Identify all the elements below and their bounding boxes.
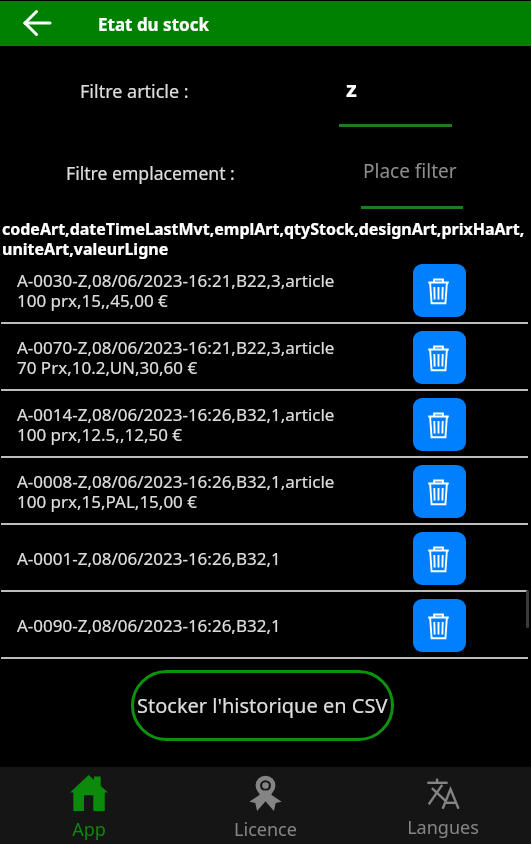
staticText: A-0014-Z,08/06/2023-16:26,B32,1,article …	[17, 403, 355, 446]
button[interactable]: Delete	[413, 264, 466, 317]
staticText: Langues	[407, 815, 479, 840]
button[interactable]: Delete	[413, 532, 466, 585]
button[interactable]: Delete	[413, 465, 466, 518]
button[interactable]: A-0008-Z,08/06/2023-16:26,B32,1,article …	[0, 458, 531, 525]
button[interactable]: Licence	[177, 767, 354, 844]
button[interactable]: A-0030-Z,08/06/2023-16:21,B22,3,article …	[0, 257, 531, 324]
staticText: A-0008-Z,08/06/2023-16:26,B32,1,article …	[17, 470, 355, 513]
staticText: codeArt,dateTimeLastMvt,emplArt,qtyStock…	[2, 218, 531, 259]
button[interactable]: Delete	[413, 398, 466, 451]
staticText: Place filter	[363, 158, 457, 184]
button[interactable]: Back	[19, 10, 55, 36]
button[interactable]: A-0014-Z,08/06/2023-16:26,B32,1,article …	[0, 391, 531, 458]
button[interactable]: Delete	[413, 599, 466, 652]
button[interactable]: Stocker l'historique en CSV	[131, 670, 394, 741]
staticText: Licence	[234, 817, 297, 842]
staticText: Etat du stock	[98, 13, 209, 36]
staticText: z	[346, 73, 357, 103]
button[interactable]: A-0070-Z,08/06/2023-16:21,B22,3,article …	[0, 324, 531, 391]
button[interactable]: Delete	[413, 331, 466, 384]
staticText: Stocker l'historique en CSV	[137, 692, 388, 719]
staticText: A-0090-Z,08/06/2023-16:26,B32,1	[17, 614, 355, 637]
staticText: A-0030-Z,08/06/2023-16:21,B22,3,article …	[17, 269, 355, 312]
button[interactable]: Langues	[354, 767, 531, 844]
staticText: Filtre emplacement :	[66, 161, 235, 185]
staticText: Filtre article :	[80, 79, 189, 104]
button[interactable]: App	[0, 767, 177, 844]
button[interactable]: A-0090-Z,08/06/2023-16:26,B32,1	[0, 592, 531, 659]
staticText: A-0001-Z,08/06/2023-16:26,B32,1	[17, 547, 355, 570]
button[interactable]: A-0001-Z,08/06/2023-16:26,B32,1	[0, 525, 531, 592]
staticText: App	[72, 817, 106, 842]
staticText: A-0070-Z,08/06/2023-16:21,B22,3,article …	[17, 336, 355, 379]
